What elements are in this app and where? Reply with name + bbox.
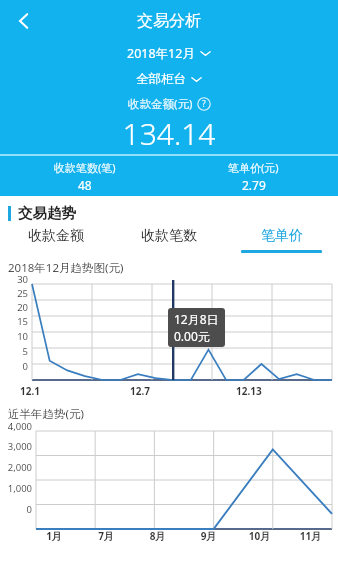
button[interactable]: 全部柜台 [130, 69, 208, 89]
staticText: 12月8日 [174, 311, 219, 327]
staticText: 2,000 [0, 461, 32, 474]
staticText: 2.79 [242, 177, 266, 193]
staticText: 25 [0, 287, 28, 300]
staticText: 交易分析 [137, 11, 201, 31]
staticText: 全部柜台 [136, 71, 186, 87]
button[interactable]: 2018年12月 [121, 43, 217, 64]
staticText: 10月 [234, 529, 285, 543]
staticText: 20 [0, 301, 28, 314]
staticText: 收款笔数(笔) [54, 160, 116, 175]
staticText: 收款金额(元) [128, 96, 193, 112]
staticText: 4,000 [0, 420, 32, 433]
button[interactable]: 收款笔数 [112, 224, 225, 256]
staticText: 收款笔数 [141, 227, 197, 245]
staticText: 30 [0, 273, 28, 286]
staticText: 笔单价 [261, 227, 303, 245]
staticText: 0 [0, 503, 32, 516]
staticText: 7月 [80, 529, 132, 543]
staticText: 5 [0, 345, 28, 358]
staticText: 48 [78, 177, 92, 193]
staticText: 134.14 [0, 113, 338, 154]
button[interactable]: 笔单价(元) [169, 156, 338, 196]
staticText: 1,000 [0, 482, 32, 495]
staticText: 0 [0, 360, 28, 373]
button[interactable]: Back [6, 3, 42, 39]
staticText: 11月 [285, 529, 336, 543]
staticText: 2018年12月 [127, 45, 195, 62]
staticText: 12.13 [236, 384, 262, 398]
staticText: 2018年12月趋势图(元) [8, 260, 124, 276]
button[interactable]: 笔单价 [225, 224, 338, 256]
button[interactable]: 帮助 [197, 97, 211, 111]
staticText: 12.1 [20, 384, 40, 398]
staticText: 3,000 [0, 440, 32, 453]
staticText: 15 [0, 315, 28, 328]
staticText: 1月 [28, 529, 80, 543]
staticText: 0.00元 [174, 328, 210, 344]
staticText: 8月 [132, 529, 183, 543]
staticText: 12.7 [130, 384, 150, 398]
staticText: 10 [0, 330, 28, 343]
staticText: 近半年趋势(元) [8, 406, 84, 422]
staticText: 交易趋势 [18, 204, 76, 222]
button[interactable]: 收款金额 [0, 224, 112, 256]
staticText: 笔单价(元) [228, 160, 279, 175]
staticText: ? [202, 98, 206, 110]
staticText: 9月 [183, 529, 234, 543]
button[interactable]: 收款笔数(笔) [0, 156, 169, 196]
staticText: 收款金额 [28, 227, 84, 245]
